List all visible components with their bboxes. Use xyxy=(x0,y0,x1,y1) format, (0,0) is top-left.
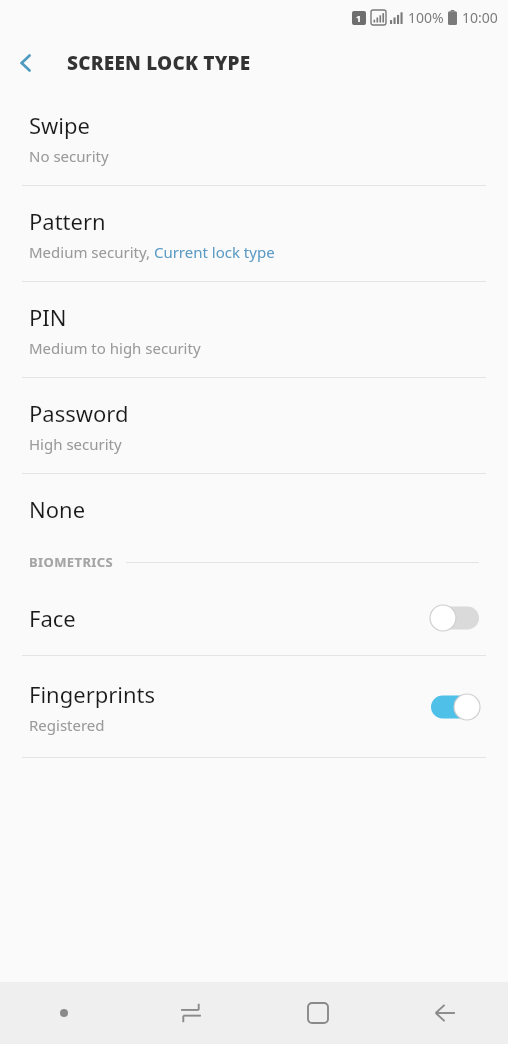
button[interactable]: Back xyxy=(381,982,508,1044)
staticText: SCREEN LOCK TYPE xyxy=(67,50,251,76)
button[interactable]: Recents xyxy=(127,982,254,1044)
staticText: None xyxy=(29,494,86,524)
staticText: Medium security, Current lock type xyxy=(29,242,275,262)
button[interactable]: On xyxy=(431,693,479,721)
button[interactable]: Home xyxy=(254,982,381,1044)
button[interactable]: Face xyxy=(0,580,508,655)
staticText: Password xyxy=(29,398,129,428)
staticText: Medium to high security xyxy=(29,338,201,358)
staticText: Swipe xyxy=(29,110,90,140)
staticText: 100% xyxy=(408,8,444,27)
button[interactable]: None xyxy=(0,474,508,544)
button[interactable]: Back xyxy=(0,37,52,89)
staticText: No security xyxy=(29,146,109,166)
button[interactable]: PIN xyxy=(0,282,508,377)
button[interactable]: Off xyxy=(431,604,479,632)
staticText: High security xyxy=(29,434,122,454)
staticText: 10:00 xyxy=(462,8,498,27)
button[interactable]: Menu xyxy=(0,982,127,1044)
staticText: Pattern xyxy=(29,206,106,236)
button[interactable]: Swipe xyxy=(0,90,508,185)
staticText: PIN xyxy=(29,302,67,332)
button[interactable]: Password xyxy=(0,378,508,473)
button[interactable]: Pattern xyxy=(0,186,508,281)
staticText: BIOMETRICS xyxy=(29,553,114,571)
staticText: 1 xyxy=(356,12,362,24)
staticText: Face xyxy=(29,603,76,633)
staticText: Fingerprints xyxy=(29,679,156,709)
button[interactable]: Fingerprints xyxy=(0,656,508,757)
staticText: Registered xyxy=(29,715,105,735)
